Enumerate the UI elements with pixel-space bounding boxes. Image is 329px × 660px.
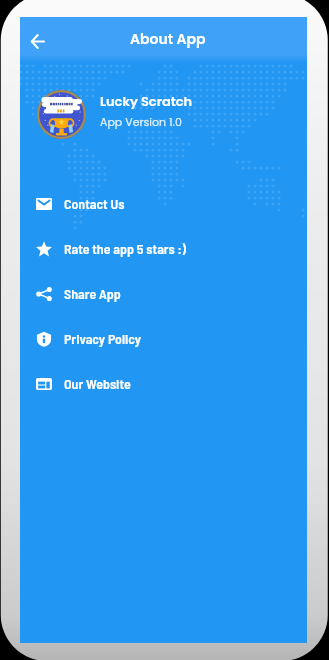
staticText: Privacy Policy bbox=[64, 330, 142, 347]
button[interactable]: Privacy Policy bbox=[20, 316, 307, 361]
button[interactable]: Rate the app 5 stars :) bbox=[20, 226, 307, 271]
staticText: Rate the app 5 stars :) bbox=[64, 240, 187, 257]
staticText: App Version 1.0 bbox=[100, 114, 182, 129]
staticText: Share App bbox=[64, 285, 121, 302]
button[interactable]: Back bbox=[21, 25, 53, 57]
staticText: Lucky Scratch bbox=[100, 92, 193, 110]
staticText: Contact Us bbox=[64, 195, 125, 212]
button[interactable]: Contact Us bbox=[20, 181, 307, 226]
button[interactable]: Our Website bbox=[20, 361, 307, 406]
staticText: About App bbox=[130, 29, 206, 49]
staticText: Our Website bbox=[64, 375, 131, 392]
button[interactable]: Share App bbox=[20, 271, 307, 316]
